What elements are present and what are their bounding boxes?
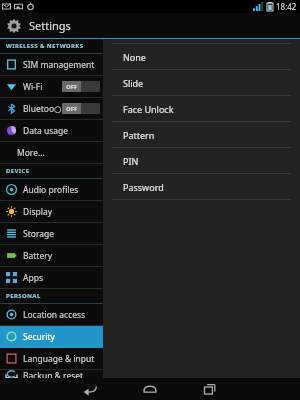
button[interactable]: Password [103, 174, 300, 199]
staticText: Apps [23, 272, 43, 284]
staticText: Password [123, 181, 164, 193]
button[interactable]: Toggle off [62, 103, 100, 114]
button[interactable]: Battery [0, 245, 103, 266]
staticText: Security [23, 331, 55, 343]
button[interactable]: Audio profiles [0, 179, 103, 200]
staticText: Location access [23, 309, 86, 321]
staticText: OFF [66, 83, 78, 91]
staticText: 18:42 [276, 1, 297, 12]
button[interactable]: Slide [103, 70, 300, 95]
staticText: OFF [66, 105, 78, 113]
staticText: Wi-Fi [23, 81, 43, 93]
staticText: Settings [29, 18, 71, 33]
button[interactable]: Settings app icon [0, 13, 300, 38]
button[interactable]: SIM management [0, 54, 103, 75]
button[interactable]: Security [0, 326, 103, 347]
button[interactable]: Toggle off [62, 81, 100, 92]
button[interactable]: More... [0, 142, 103, 163]
other: Settings app icon [6, 18, 22, 34]
button[interactable]: Storage [0, 223, 103, 244]
staticText: Face Unlock [123, 103, 174, 115]
staticText: Audio profiles [23, 184, 79, 196]
button[interactable]: Display [0, 201, 103, 222]
button[interactable]: Apps [0, 267, 103, 288]
staticText: Storage [23, 228, 55, 240]
staticText: Display [23, 206, 52, 218]
button[interactable]: Bluetoo○ [0, 98, 103, 119]
staticText: Language & input [23, 353, 95, 365]
staticText: SIM management [23, 59, 95, 71]
button[interactable]: Pattern [103, 122, 300, 147]
staticText: Bluetoo○ [23, 103, 62, 115]
staticText: Data usage [23, 125, 69, 137]
staticText: PIN [123, 155, 139, 167]
button[interactable]: Backup & reset [0, 370, 103, 378]
button[interactable]: Home [120, 378, 180, 400]
staticText: DEVICE [6, 167, 30, 175]
staticText: Pattern [123, 129, 155, 141]
staticText: Battery [23, 250, 53, 262]
staticText: More... [17, 147, 45, 159]
staticText: WIRELESS & NETWORKS [6, 42, 84, 50]
staticText: Slide [123, 77, 144, 89]
button[interactable]: Data usage [0, 120, 103, 141]
button[interactable]: Language & input [0, 348, 103, 369]
staticText: Backup & reset [23, 370, 84, 378]
staticText: PERSONAL [6, 292, 41, 300]
button[interactable]: None [103, 44, 300, 69]
staticText: None [123, 51, 146, 63]
button[interactable]: Location access [0, 304, 103, 325]
button[interactable]: Recent apps [180, 378, 240, 400]
button[interactable]: PIN [103, 148, 300, 173]
button[interactable]: Back [60, 378, 120, 400]
button[interactable]: Wi-Fi [0, 76, 103, 97]
button[interactable]: Face Unlock [103, 96, 300, 121]
